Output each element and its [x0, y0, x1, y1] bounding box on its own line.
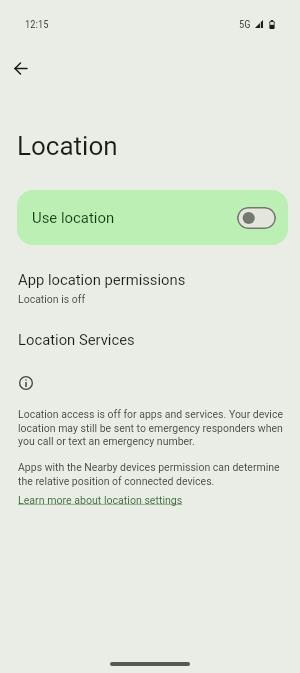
- button[interactable]: Information: [17, 374, 35, 392]
- button[interactable]: Use location: [17, 190, 288, 245]
- staticText: Use location: [32, 209, 115, 226]
- staticText: App location permissions: [18, 271, 186, 288]
- staticText: 12:15: [25, 18, 49, 30]
- staticText: Location access is off for apps and serv…: [18, 408, 285, 447]
- button[interactable]: Back: [1, 48, 41, 88]
- staticText: 5G: [239, 18, 251, 30]
- staticText: Location Services: [18, 331, 135, 348]
- button[interactable]: Use location: [237, 207, 276, 229]
- staticText: Learn more about location settings: [18, 494, 183, 506]
- staticText: Location is off: [18, 293, 86, 305]
- staticText: Apps with the Nearby devices permission …: [18, 461, 285, 487]
- button[interactable]: Learn more about location settings: [18, 494, 183, 506]
- staticText: Location: [17, 131, 118, 161]
